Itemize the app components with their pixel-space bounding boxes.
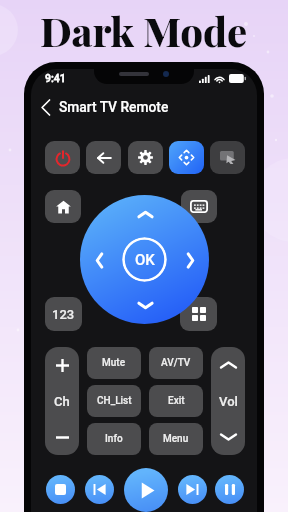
staticText: Mute bbox=[102, 357, 126, 369]
button[interactable]: CH_List bbox=[87, 385, 141, 417]
staticText: CH_List bbox=[97, 395, 132, 407]
button[interactable]: Left bbox=[88, 238, 110, 282]
button[interactable]: Apps bbox=[180, 297, 217, 331]
button[interactable]: AV/TV bbox=[149, 347, 203, 379]
button[interactable]: Pause bbox=[215, 475, 244, 504]
staticText: AV/TV bbox=[161, 357, 191, 369]
button[interactable]: Move bbox=[169, 141, 204, 174]
button[interactable]: Previous bbox=[85, 475, 114, 504]
staticText: 9:41 bbox=[45, 72, 66, 84]
button[interactable]: Stop bbox=[46, 475, 75, 504]
staticText: Exit bbox=[168, 395, 185, 407]
button[interactable]: OK bbox=[122, 237, 167, 282]
button[interactable]: Play bbox=[124, 468, 168, 512]
staticText: Menu bbox=[163, 433, 189, 445]
button[interactable]: Back bbox=[86, 141, 121, 174]
button[interactable]: Channel bbox=[45, 347, 79, 455]
button[interactable]: Numbers bbox=[45, 297, 82, 331]
staticText: Ch bbox=[54, 394, 70, 409]
button[interactable]: Down bbox=[123, 294, 167, 316]
button[interactable]: Next bbox=[178, 475, 207, 504]
button[interactable]: Power bbox=[45, 141, 80, 174]
button[interactable]: Right bbox=[179, 238, 201, 282]
button[interactable]: Up bbox=[123, 203, 167, 225]
button[interactable]: Keyboard bbox=[181, 190, 217, 223]
staticText: Smart TV Remote bbox=[59, 99, 169, 115]
button[interactable]: Mute bbox=[87, 347, 141, 379]
staticText: 123 bbox=[52, 307, 75, 322]
staticText: OK bbox=[135, 251, 155, 269]
staticText: Info bbox=[105, 433, 123, 445]
button[interactable]: Back bbox=[34, 96, 56, 118]
button[interactable]: Touchpad bbox=[210, 141, 245, 174]
staticText: Vol bbox=[219, 394, 238, 409]
button[interactable]: Settings bbox=[128, 141, 163, 174]
button[interactable]: Info bbox=[87, 423, 141, 455]
button[interactable]: Volume bbox=[211, 347, 245, 455]
staticText: Dark Mode bbox=[40, 4, 248, 57]
button[interactable]: Exit bbox=[149, 385, 203, 417]
button[interactable]: Home bbox=[45, 190, 81, 223]
button[interactable]: Menu bbox=[149, 423, 203, 455]
